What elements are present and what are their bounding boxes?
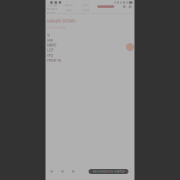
button[interactable]: Home [61,170,64,173]
button[interactable]: List [47,48,53,52]
button[interactable]: sl [47,33,50,37]
button[interactable]: Pekárna [47,58,61,63]
staticText: Nákupní seznam [47,18,76,23]
button[interactable]: Cart [129,5,131,8]
button[interactable]: olej [47,53,53,57]
button[interactable]: Maso [47,43,56,47]
button[interactable]: Open chat [126,43,134,51]
button[interactable]: Doprava [46,4,56,14]
staticText: Menu [65,4,73,7]
button[interactable]: Rok [47,38,53,42]
staticText: Účet [82,4,89,7]
staticText: Maso [47,43,56,47]
staticText: Košík [82,9,89,12]
button[interactable]: Logo [97,5,114,8]
staticText: Hlavní jídla [47,25,66,29]
staticText: List [47,48,53,52]
staticText: Doprava [46,4,56,7]
button[interactable]: Back [50,170,53,173]
staticText: Pekárna [47,58,61,63]
staticText: zdarma [46,11,54,14]
staticText: Rok [47,38,53,42]
button[interactable]: Menu [65,4,73,12]
button[interactable]: Účet [82,4,89,12]
staticText: a platba [46,7,56,11]
staticText: sl [47,33,50,37]
staticText: Recreated by SwiftUI [92,170,124,173]
button[interactable]: Recents [72,170,74,173]
staticText: olej [47,53,53,57]
staticText: Akce [66,9,73,12]
button[interactable]: Search [123,5,126,8]
